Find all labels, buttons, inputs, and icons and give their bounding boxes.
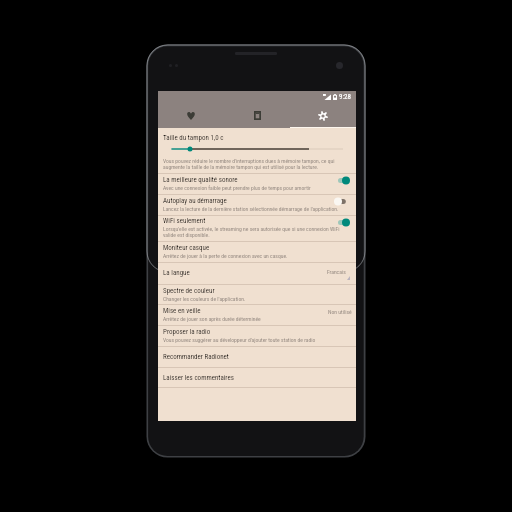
staticText: 9:28	[339, 93, 352, 101]
staticText: Autoplay au démarrage	[163, 197, 227, 205]
staticText: Arrêtez de jouer à la perte de connexion…	[163, 253, 288, 260]
button[interactable]: Taille du tampon 1,0 c	[158, 128, 356, 173]
staticText: La langue	[163, 269, 190, 277]
staticText: Laisser les commentaires	[163, 374, 234, 382]
button[interactable]: La meilleure qualité sonore	[158, 173, 356, 194]
staticText: Mise en veille	[163, 307, 201, 315]
button[interactable]: WiFi seulement	[158, 215, 356, 240]
staticText: WiFi seulement	[163, 217, 206, 225]
staticText: Proposer la radio	[163, 328, 211, 336]
staticText: Lorsqu'elle est activée, le streaming ne…	[163, 226, 351, 238]
staticText: Taille du tampon 1,0 c	[163, 134, 224, 142]
button[interactable]: Moniteur casque	[158, 241, 356, 262]
button[interactable]: La langue	[158, 262, 356, 284]
staticText: Non utilisé	[328, 309, 352, 316]
staticText: Recommander Radionet	[163, 353, 229, 361]
button[interactable]: Favorites	[158, 103, 224, 128]
staticText: Moniteur casque	[163, 244, 210, 252]
staticText: Changer les couleurs de l'application.	[163, 296, 246, 303]
staticText: Vous pouvez réduire le nombre d'interrup…	[163, 158, 356, 170]
staticText: Avec une connexion faible peut prendre p…	[163, 185, 311, 192]
button[interactable]: Recommander Radionet	[158, 346, 356, 367]
button[interactable]: Mise en veille	[158, 304, 356, 325]
staticText: Spectre de couleur	[163, 287, 215, 295]
button[interactable]: Autoplay au démarrage	[158, 194, 356, 215]
button[interactable]: Stations	[224, 103, 290, 128]
staticText: Lancez la lecture de la dernière station…	[163, 206, 339, 213]
staticText: Francais	[327, 269, 346, 276]
staticText: Vous pouvez suggérer au développeur d'aj…	[163, 337, 316, 344]
button[interactable]: Laisser les commentaires	[158, 367, 356, 388]
staticText: La meilleure qualité sonore	[163, 176, 238, 184]
button[interactable]: Settings	[290, 103, 356, 128]
button[interactable]: Spectre de couleur	[158, 284, 356, 305]
button[interactable]: Proposer la radio	[158, 325, 356, 346]
staticText: Arrêtez de jouer son après durée détermi…	[163, 316, 261, 323]
